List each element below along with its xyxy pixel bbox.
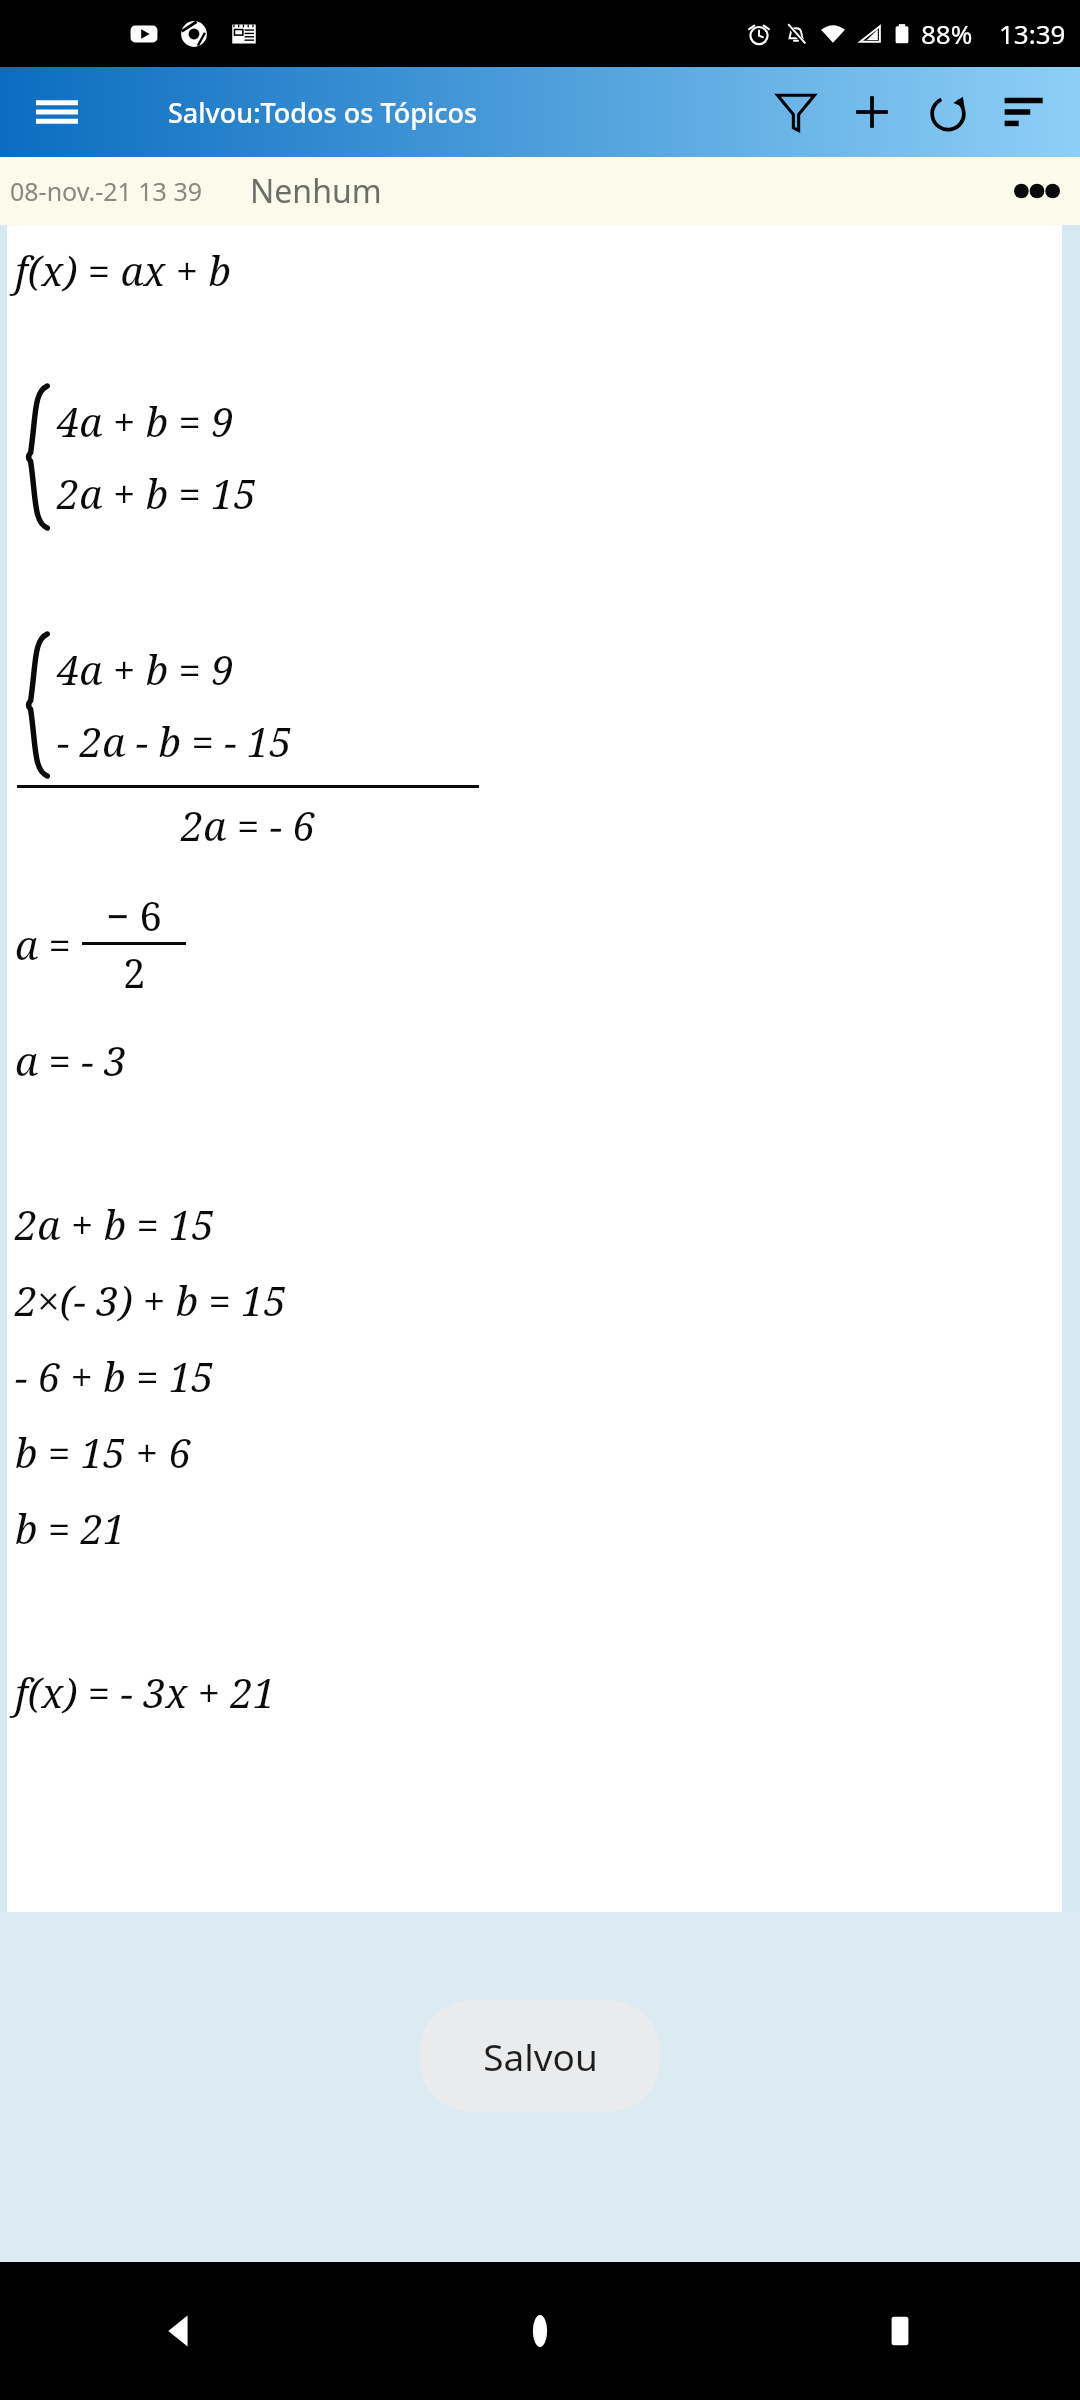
staticText: 13:39 [999, 16, 1066, 51]
staticText: 08-nov.-21 13 39 [10, 174, 202, 208]
button[interactable]: f(x) = ax + b [7, 225, 1062, 1912]
staticText: Nenhum [250, 169, 382, 213]
staticText: − 2a − b = − 15 [57, 714, 292, 768]
staticText: b = 21 [15, 1501, 126, 1555]
staticText: b = 15 + 6 [15, 1425, 191, 1479]
staticText: 2 [123, 945, 146, 999]
staticText: 2a + b = 15 [15, 1197, 215, 1251]
staticText: 2a + b = 15 [57, 466, 257, 520]
staticText: Salvou:Todos os Tópicos [168, 94, 478, 131]
button[interactable]: 08-nov.-21 13 39 [0, 157, 1080, 225]
staticText: a = [15, 917, 82, 971]
button[interactable]: Filter [758, 74, 834, 150]
staticText: Salvou [483, 2031, 598, 2081]
staticText: 2a = − 6 [181, 798, 315, 852]
button[interactable]: Add [834, 74, 910, 150]
staticText: f(x) = ax + b [15, 243, 232, 297]
button[interactable]: Menu [28, 83, 86, 141]
staticText: 88% [921, 16, 973, 51]
staticText: a = − 3 [15, 1033, 127, 1087]
button[interactable]: Recents [720, 2262, 1080, 2400]
button[interactable]: Back [0, 2262, 360, 2400]
staticText: 2×(− 3) + b = 15 [15, 1273, 287, 1327]
staticText: − 6 + b = 15 [15, 1349, 214, 1403]
staticText: 4a + b = 9 [57, 394, 234, 448]
staticText: 4a + b = 9 [57, 642, 234, 696]
button[interactable]: Refresh [910, 74, 986, 150]
button[interactable]: Sort [986, 74, 1062, 150]
button[interactable]: Home [360, 2262, 720, 2400]
button[interactable]: Salvou [420, 2000, 660, 2112]
staticText: f(x) = − 3x + 21 [15, 1665, 276, 1719]
button[interactable]: More options [994, 157, 1080, 225]
staticText: − 6 [106, 888, 162, 942]
